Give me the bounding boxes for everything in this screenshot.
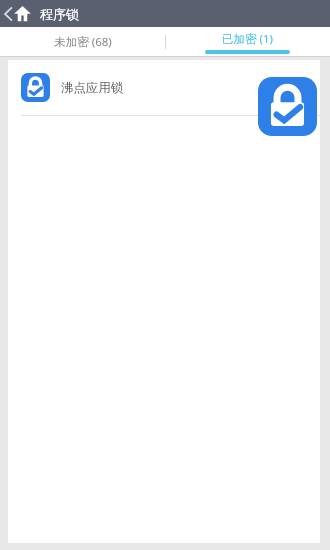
- button[interactable]: App lock: [258, 77, 317, 136]
- button[interactable]: 沸点应用锁: [8, 60, 320, 115]
- button[interactable]: 未加密 (68): [0, 27, 165, 57]
- button[interactable]: Back to home: [0, 0, 33, 27]
- staticText: 未加密 (68): [54, 34, 112, 50]
- staticText: 沸点应用锁: [61, 80, 124, 96]
- staticText: 已加密 (1): [222, 31, 273, 47]
- button[interactable]: 已加密 (1): [165, 27, 330, 57]
- staticText: 程序锁: [40, 6, 79, 22]
